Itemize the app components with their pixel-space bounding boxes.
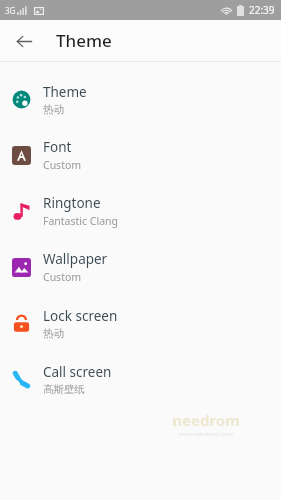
button[interactable]: Font <box>0 127 281 183</box>
staticText: Ringtone <box>43 194 101 212</box>
button[interactable]: Back <box>8 25 40 57</box>
staticText: Custom <box>43 158 82 172</box>
staticText: 热动 <box>43 103 64 116</box>
staticText: Theme <box>56 29 112 52</box>
staticText: Font <box>43 138 72 156</box>
staticText: Theme <box>43 83 87 101</box>
staticText: Fantastic Clang <box>43 214 118 228</box>
staticText: Custom <box>43 270 82 284</box>
staticText: 3G <box>5 5 16 16</box>
staticText: needrom <box>172 410 240 430</box>
staticText: Lock screen <box>43 307 118 325</box>
staticText: www.needrom.com <box>178 430 234 438</box>
staticText: Wallpaper <box>43 250 108 268</box>
button[interactable]: Theme <box>0 71 281 127</box>
staticText: 高斯壁纸 <box>43 383 85 396</box>
button[interactable]: Ringtone <box>0 183 281 239</box>
button[interactable]: Lock screen <box>0 295 281 351</box>
staticText: Call screen <box>43 363 112 381</box>
staticText: 22:39 <box>249 3 275 17</box>
staticText: 热动 <box>43 327 64 340</box>
button[interactable]: Call screen <box>0 351 281 407</box>
button[interactable]: Wallpaper <box>0 239 281 295</box>
